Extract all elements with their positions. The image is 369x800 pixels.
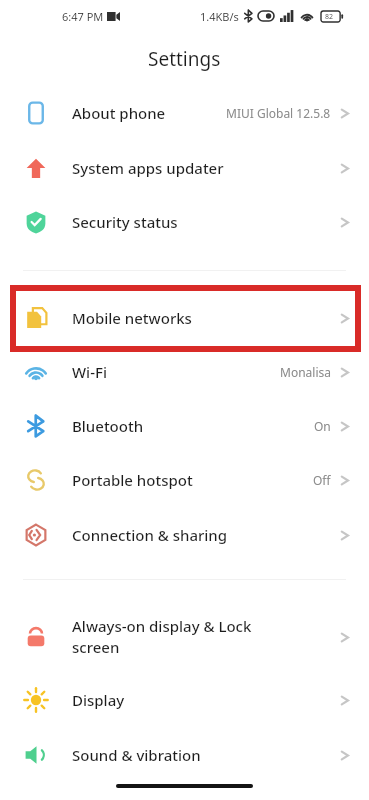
button[interactable]: Always-on display and Lock screen: [0, 607, 369, 667]
staticText: Settings: [148, 46, 221, 72]
button[interactable]: Display: [0, 673, 369, 727]
staticText: 6:47 PM: [62, 9, 104, 24]
staticText: About phone: [72, 103, 166, 123]
staticText: Security status: [72, 212, 178, 232]
staticText: 82: [325, 12, 334, 22]
staticText: System apps updater: [72, 158, 224, 178]
staticText: Off: [313, 472, 331, 488]
staticText: Portable hotspot: [72, 470, 193, 490]
staticText: Bluetooth: [72, 416, 144, 436]
staticText: Connection & sharing: [72, 525, 228, 545]
button[interactable]: Bluetooth: [0, 399, 369, 453]
button[interactable]: Mobile networks: [0, 291, 369, 345]
button[interactable]: Wi-Fi: [0, 345, 369, 399]
staticText: Monalisa: [280, 364, 331, 380]
button[interactable]: Security status: [0, 195, 369, 249]
staticText: MIUI Global 12.5.8: [226, 105, 331, 121]
staticText: Always-on display & Lock screen: [72, 616, 252, 658]
staticText: Mobile networks: [72, 308, 192, 328]
staticText: Sound & vibration: [72, 745, 201, 765]
button[interactable]: About phone: [0, 86, 369, 140]
button[interactable]: Portable hotspot: [0, 453, 369, 507]
button[interactable]: Connection and sharing: [0, 508, 369, 562]
staticText: 1.4KB/s: [200, 9, 239, 24]
button[interactable]: System apps updater: [0, 141, 369, 195]
staticText: Display: [72, 690, 125, 710]
button[interactable]: Sound and vibration: [0, 728, 369, 782]
staticText: Wi-Fi: [72, 362, 107, 382]
staticText: On: [314, 418, 331, 434]
